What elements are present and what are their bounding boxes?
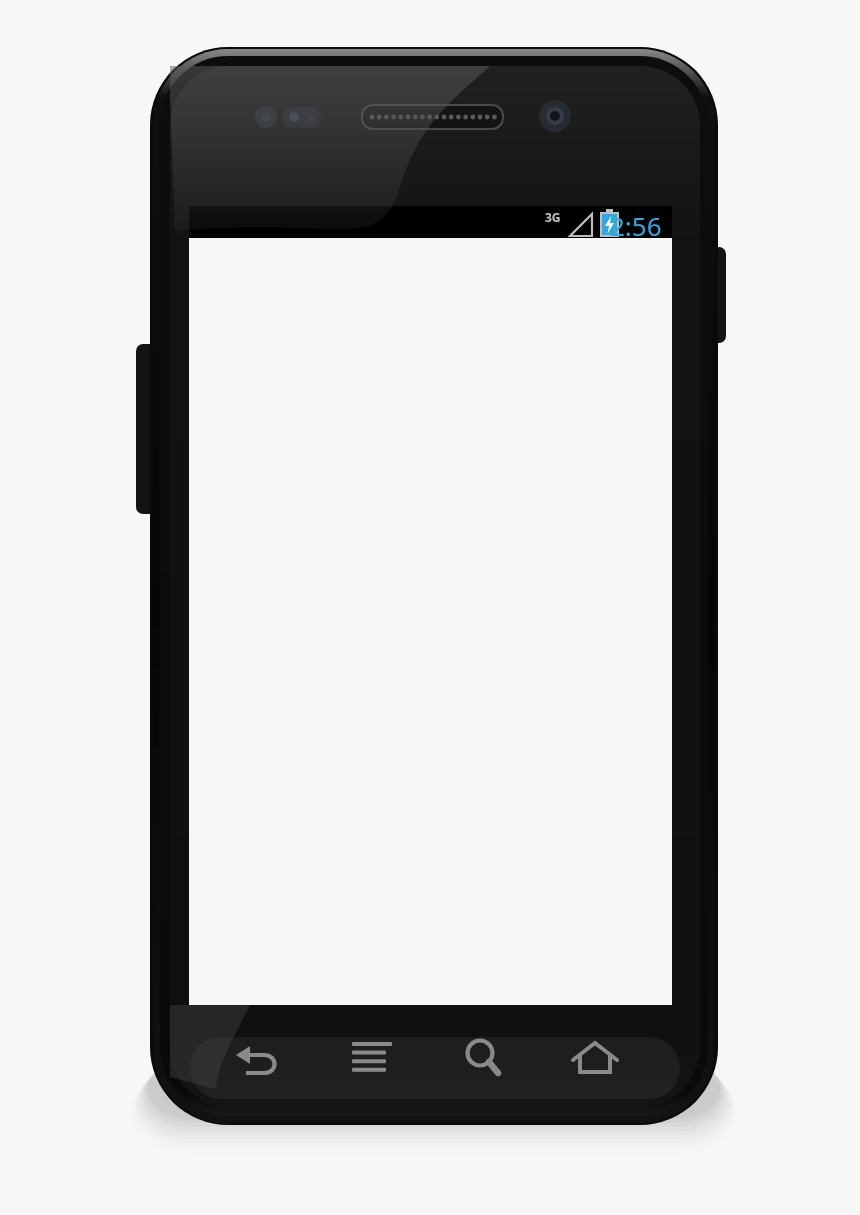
staticText: 3G [545, 209, 561, 225]
button[interactable]: Menu [334, 1026, 410, 1090]
button[interactable]: Back [222, 1026, 298, 1090]
button[interactable]: Home [557, 1026, 633, 1090]
staticText: 2:56 [610, 208, 662, 238]
button[interactable]: Search [445, 1026, 521, 1090]
